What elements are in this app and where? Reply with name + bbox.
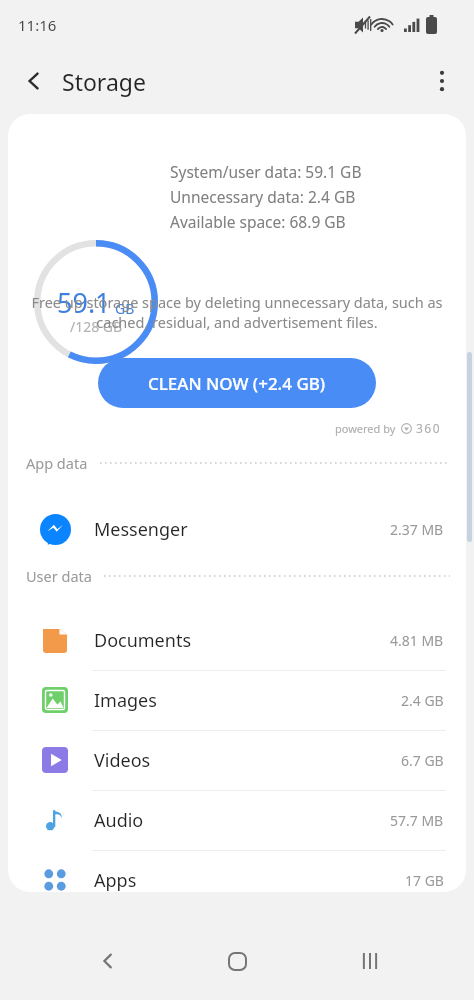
button[interactable]: Videos (8, 730, 466, 790)
staticText: powered by (335, 421, 396, 436)
staticText: Images (94, 688, 157, 713)
staticText: Free up storage space by deleting unnece… (26, 292, 448, 333)
staticText: 57.7 MB (390, 811, 444, 830)
button[interactable]: Audio (8, 790, 466, 850)
staticText: 4.81 MB (390, 631, 444, 650)
staticText: 11:16 (18, 15, 57, 35)
button[interactable]: More options (418, 57, 466, 105)
button[interactable]: Back (10, 57, 58, 105)
button[interactable]: CLEAN NOW (+2.4 GB) (98, 358, 376, 408)
staticText: Documents (94, 628, 192, 653)
staticText: Videos (94, 748, 151, 773)
staticText: Audio (94, 808, 144, 833)
button[interactable]: Messenger (8, 499, 466, 559)
staticText: Available space: 68.9 GB (170, 211, 346, 232)
staticText: Unnecessary data: 2.4 GB (170, 186, 356, 207)
button[interactable]: Recent apps (344, 935, 396, 987)
staticText: GB (115, 299, 135, 318)
button[interactable]: Documents (8, 610, 466, 670)
button[interactable]: Images (8, 670, 466, 730)
staticText: 6.7 GB (401, 751, 444, 770)
button[interactable]: Back (82, 935, 134, 987)
staticText: 2.37 MB (390, 520, 444, 539)
staticText: Messenger (94, 517, 188, 542)
staticText: User data (26, 566, 92, 586)
staticText: 59.1 (57, 284, 111, 321)
staticText: System/user data: 59.1 GB (170, 161, 362, 182)
staticText: 360 (416, 420, 442, 436)
button[interactable]: Apps (8, 850, 466, 892)
staticText: Storage (62, 66, 146, 97)
button[interactable]: Home (211, 935, 263, 987)
staticText: /128 GB (70, 317, 123, 336)
staticText: Apps (94, 868, 137, 892)
staticText: 2.4 GB (401, 691, 444, 710)
staticText: App data (26, 453, 88, 473)
staticText: 17 GB (405, 871, 444, 890)
staticText: CLEAN NOW (+2.4 GB) (148, 372, 326, 395)
